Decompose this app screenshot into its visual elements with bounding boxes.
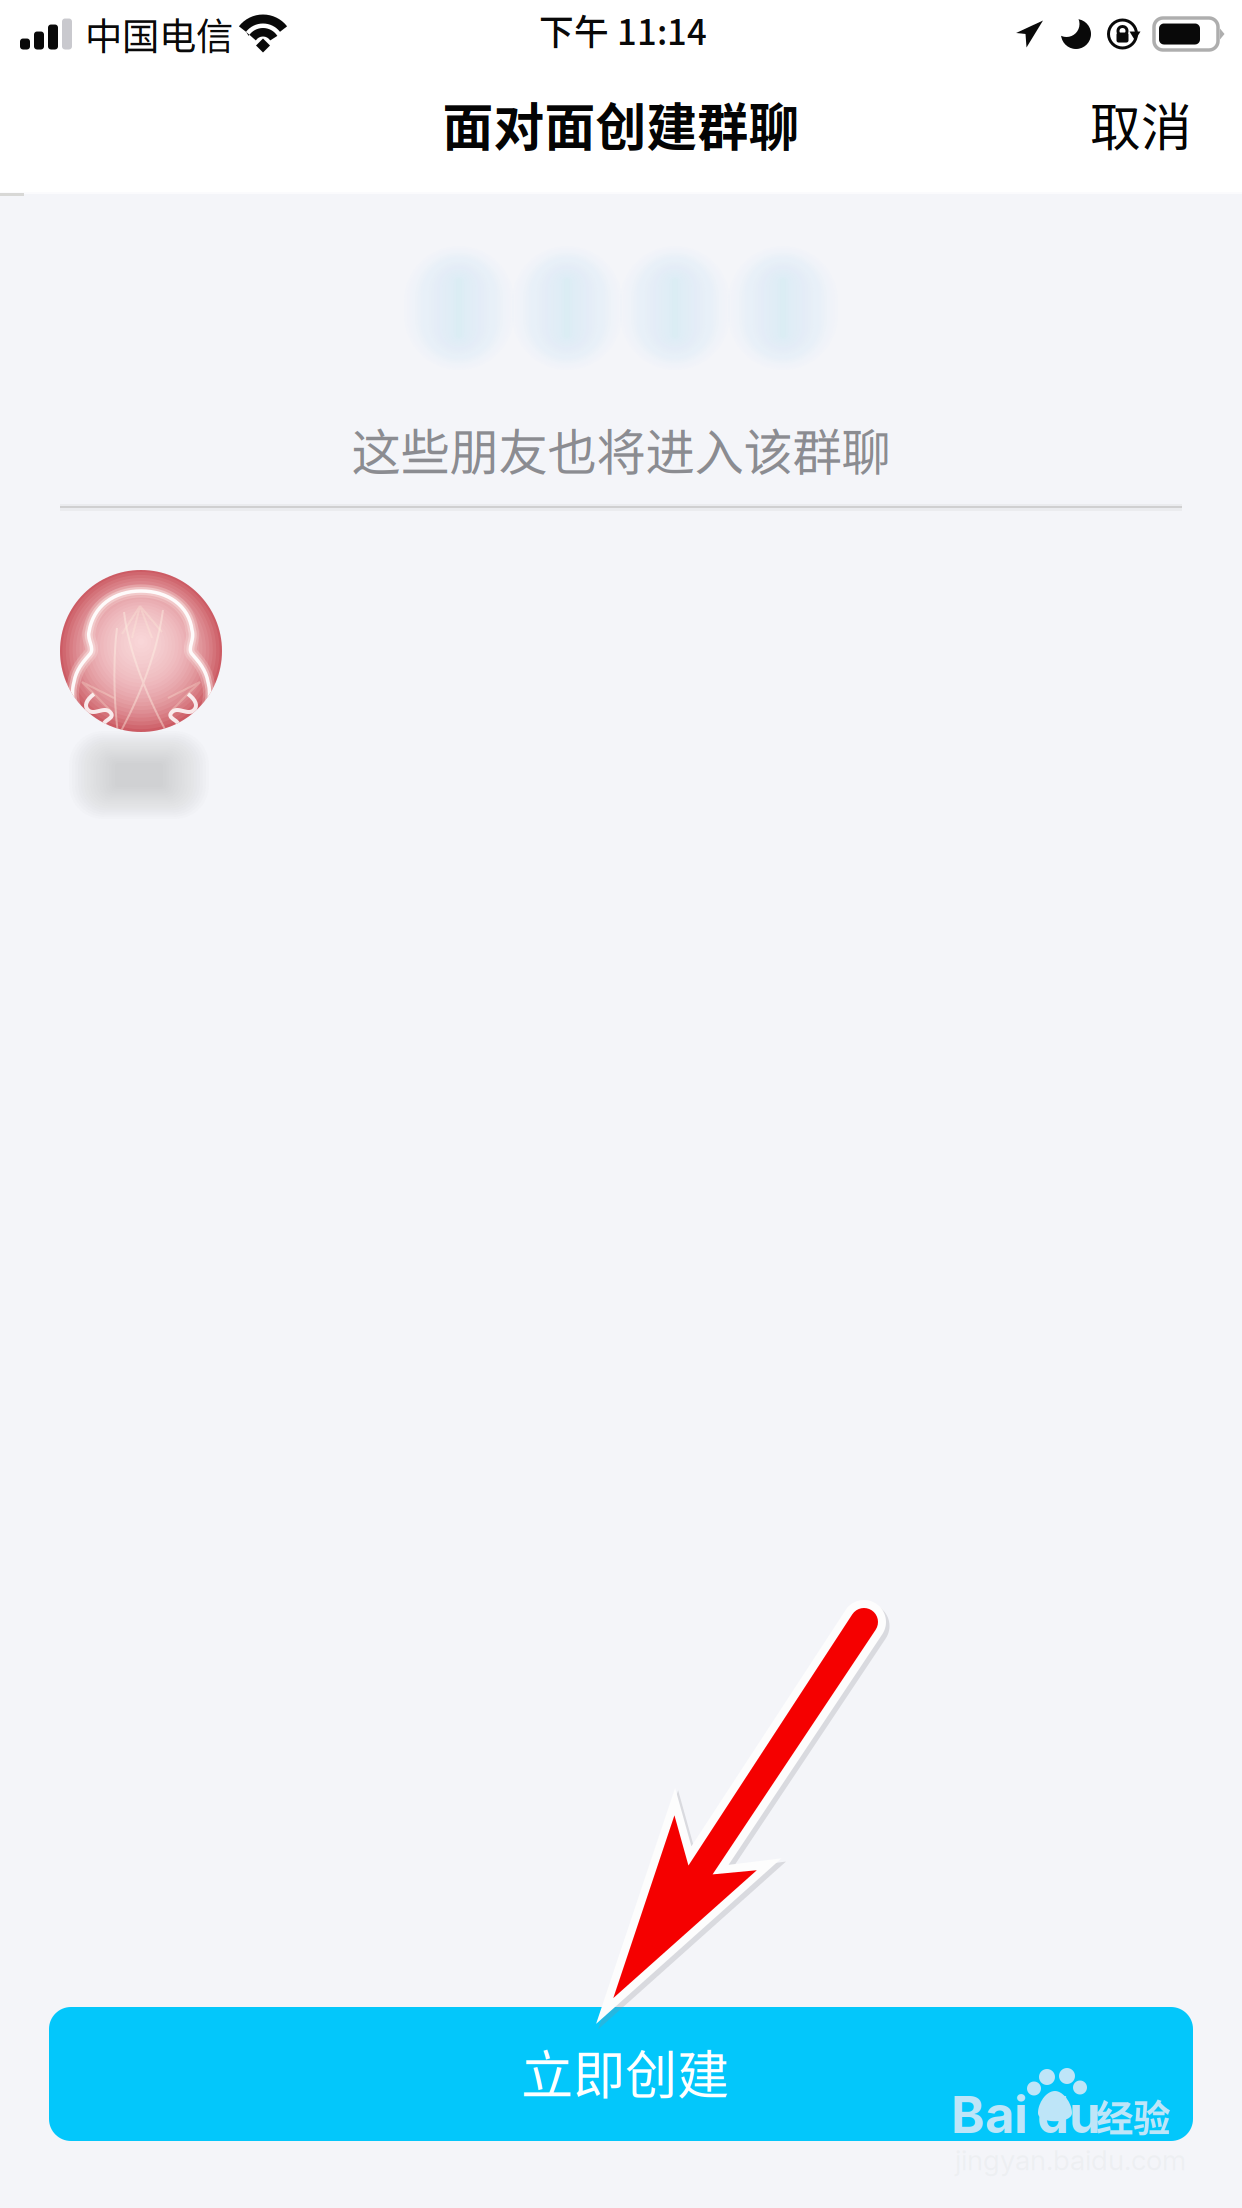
button[interactable]: 取消 [1070,73,1212,187]
staticText: 中国电信 [85,7,233,61]
staticText: 下午 11:14 [539,5,707,55]
staticText: 取消 [1090,87,1192,161]
staticText: 面对面创建群聊 [442,87,799,161]
staticText: 经验 [1096,2089,1170,2143]
staticText: 这些朋友也将进入该群聊 [351,413,890,484]
button[interactable]: 立即创建 [49,2007,1193,2141]
staticText: Bai [951,2084,1028,2145]
staticText: 立即创建 [521,2034,729,2109]
button[interactable]: Friend [60,570,222,820]
staticText: du [1037,2084,1101,2145]
